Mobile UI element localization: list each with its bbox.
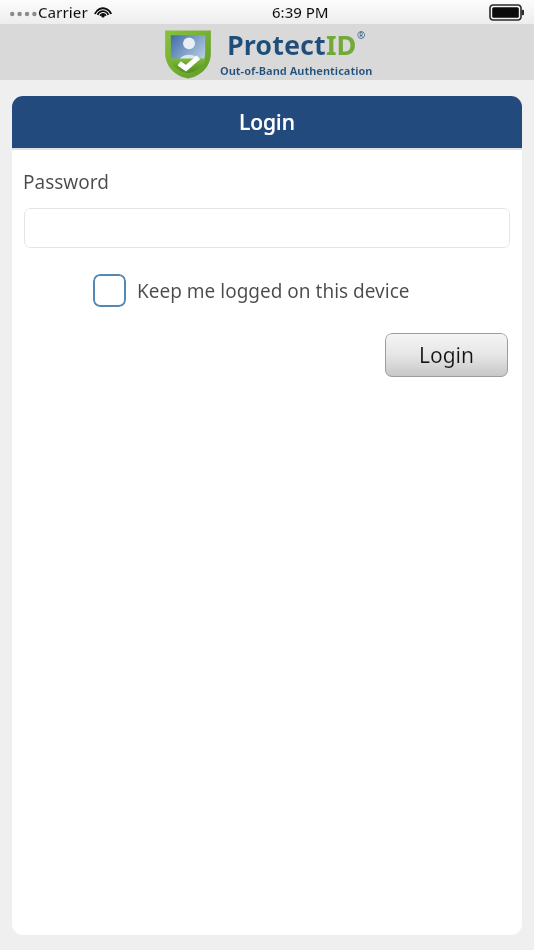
staticText: Carrier: [38, 2, 88, 22]
staticText: Keep me logged on this device: [137, 278, 410, 304]
button[interactable]: Keep me logged on this device: [93, 274, 410, 307]
staticText: Out-of-Band Authentication: [220, 63, 373, 78]
button[interactable]: Login: [12, 96, 522, 148]
staticText: Login: [419, 341, 475, 370]
staticText: Login: [239, 108, 295, 137]
staticText: Password: [23, 169, 109, 195]
staticText: ID: [326, 26, 357, 63]
button[interactable]: [24, 208, 510, 248]
staticText: Protect: [227, 26, 326, 63]
staticText: ®: [357, 28, 366, 42]
other: Keep me logged on this device: [93, 274, 126, 307]
staticText: 6:39 PM: [272, 2, 329, 22]
button[interactable]: Login: [385, 333, 508, 377]
